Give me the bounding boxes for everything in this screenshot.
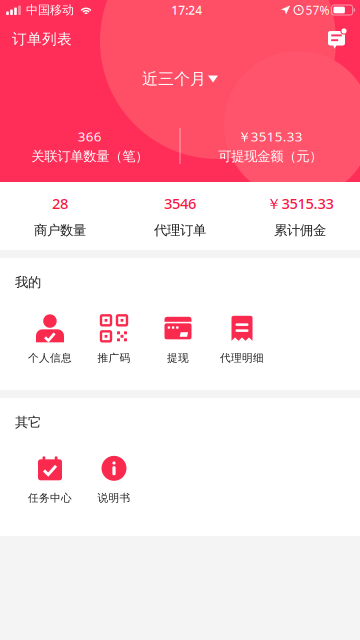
staticText: 17:24 [171, 2, 202, 18]
staticText: 任务中心 [28, 491, 72, 504]
button[interactable]: 代理明细 [210, 306, 274, 370]
staticText: 订单列表 [12, 30, 72, 48]
button[interactable]: 近三个月 [130, 66, 230, 92]
staticText: 其它 [15, 414, 41, 430]
staticText: 中国移动 [26, 3, 74, 17]
button[interactable]: 说明书 [82, 446, 146, 510]
staticText: 说明书 [97, 491, 130, 504]
staticText: 可提现金额（元） [218, 148, 322, 165]
staticText: 关联订单数量（笔） [31, 148, 148, 165]
staticText: 28 [52, 194, 68, 213]
button[interactable]: 提现 [146, 306, 210, 370]
staticText: 3546 [164, 194, 196, 213]
staticText: 个人信息 [28, 351, 72, 364]
staticText: 提现 [167, 351, 189, 364]
staticText: 近三个月 [142, 69, 206, 89]
button[interactable]: 个人信息 [18, 306, 82, 370]
staticText: 推广码 [97, 351, 130, 364]
staticText: 商户数量 [34, 222, 86, 238]
staticText: 代理订单 [154, 222, 206, 238]
staticText: ￥3515.33 [266, 193, 333, 213]
button[interactable]: 推广码 [82, 306, 146, 370]
staticText: ￥3515.33 [238, 127, 303, 145]
staticText: 代理明细 [220, 351, 264, 364]
staticText: 累计佣金 [274, 222, 326, 238]
staticText: 57% [306, 2, 330, 18]
button[interactable]: 任务中心 [18, 446, 82, 510]
button[interactable]: 消息 [317, 20, 358, 58]
staticText: 366 [78, 127, 102, 145]
staticText: 我的 [15, 274, 41, 290]
